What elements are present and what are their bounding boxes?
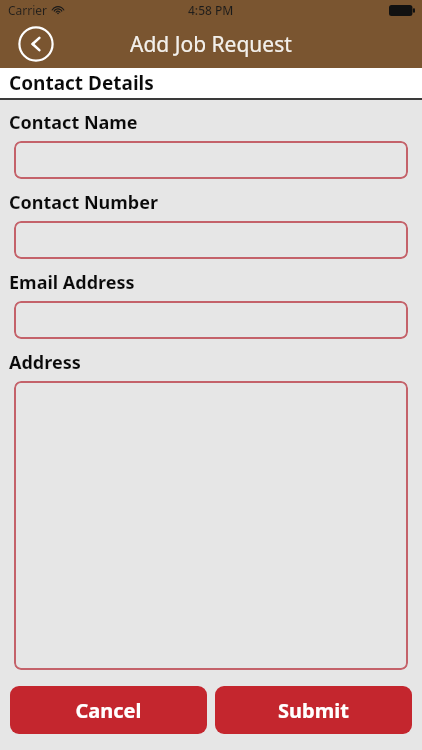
staticText: Address bbox=[9, 350, 81, 375]
staticText: Contact Details bbox=[9, 70, 154, 96]
button[interactable]: Address input bbox=[14, 381, 408, 670]
staticText: Submit bbox=[278, 697, 349, 724]
staticText: Cancel bbox=[75, 697, 142, 724]
button[interactable]: Contact Number input bbox=[14, 221, 408, 259]
staticText: Add Job Request bbox=[130, 30, 292, 59]
staticText: Carrier bbox=[8, 2, 48, 18]
staticText: Contact Number bbox=[9, 190, 158, 215]
button[interactable]: Email Address input bbox=[14, 301, 408, 339]
button[interactable]: Back bbox=[18, 26, 54, 62]
staticText: Email Address bbox=[9, 270, 135, 295]
button[interactable]: Submit bbox=[215, 686, 412, 734]
button[interactable]: Cancel bbox=[10, 686, 207, 734]
staticText: Contact Name bbox=[9, 110, 138, 135]
staticText: 4:58 PM bbox=[188, 2, 234, 18]
button[interactable]: Contact Name input bbox=[14, 141, 408, 179]
